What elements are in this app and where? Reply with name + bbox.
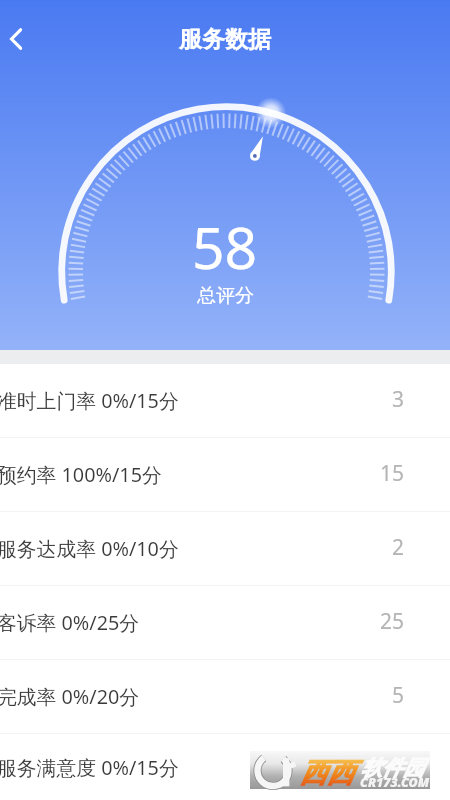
staticText: 准时上门率 0%/15分 — [0, 387, 389, 414]
staticText: 服务达成率 0%/10分 — [0, 535, 389, 562]
staticText: 总评分 — [197, 284, 254, 308]
staticText: 客诉率 0%/25分 — [0, 609, 377, 636]
button[interactable]: 准时上门率 0%/15分 — [0, 364, 450, 437]
staticText: CR173.COM — [360, 774, 430, 791]
button[interactable]: Back — [0, 15, 40, 63]
staticText: 完成率 0%/20分 — [0, 683, 389, 710]
button[interactable]: 服务达成率 0%/10分 — [0, 512, 450, 585]
staticText: 软件园 — [361, 755, 424, 781]
staticText: 58 — [192, 208, 258, 286]
staticText: 服务满意度 0%/15分 — [0, 754, 402, 781]
staticText: 25 — [380, 607, 405, 636]
staticText: 3 — [392, 385, 405, 414]
button[interactable]: 预约率 100%/15分 — [0, 438, 450, 511]
staticText: 2 — [392, 533, 405, 562]
staticText: 服务数据 — [179, 25, 271, 54]
button[interactable]: 客诉率 0%/25分 — [0, 586, 450, 659]
staticText: 西西 — [300, 756, 354, 790]
staticText: 预约率 100%/15分 — [0, 461, 377, 488]
staticText: 15 — [380, 459, 405, 488]
button[interactable]: 服务满意度 0%/15分 — [0, 734, 450, 800]
button[interactable]: 完成率 0%/20分 — [0, 660, 450, 733]
staticText: 5 — [392, 681, 405, 710]
